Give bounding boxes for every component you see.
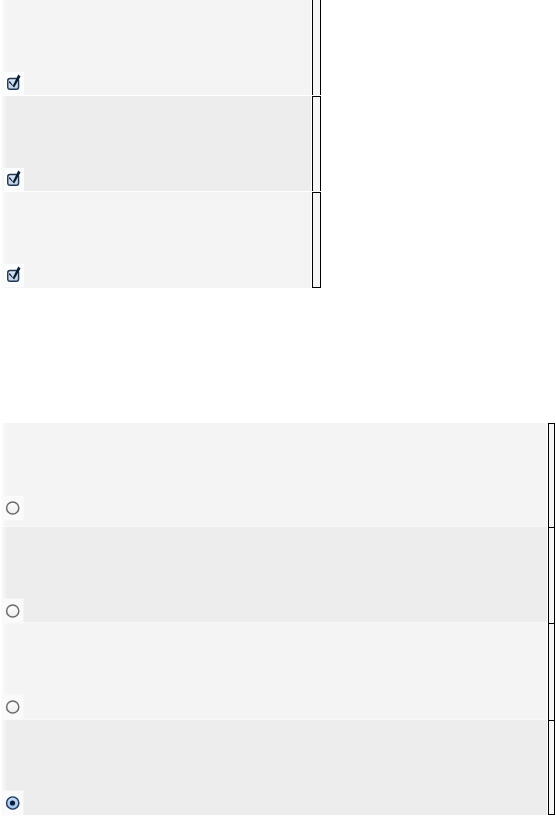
button[interactable]: Checked checkbox (4, 168, 25, 192)
button[interactable]: Radio button (2, 495, 24, 521)
button[interactable]: Checkbox option 2 (1, 96, 311, 191)
button[interactable]: Radio option 4 (1, 720, 547, 815)
button[interactable]: Radio button (2, 598, 24, 624)
button[interactable]: Checked checkbox (4, 72, 25, 96)
button[interactable]: Radio option 2 (1, 527, 547, 623)
button[interactable]: Checkbox option 3 (1, 192, 311, 288)
button[interactable]: Radio option 1 (1, 423, 547, 527)
button[interactable]: Selected radio button (2, 790, 24, 816)
button[interactable]: Radio option 3 (1, 623, 547, 720)
button[interactable]: Checked checkbox (4, 264, 25, 288)
button[interactable]: Checkbox option 1 (1, 0, 311, 95)
button[interactable]: Radio button (2, 694, 24, 720)
